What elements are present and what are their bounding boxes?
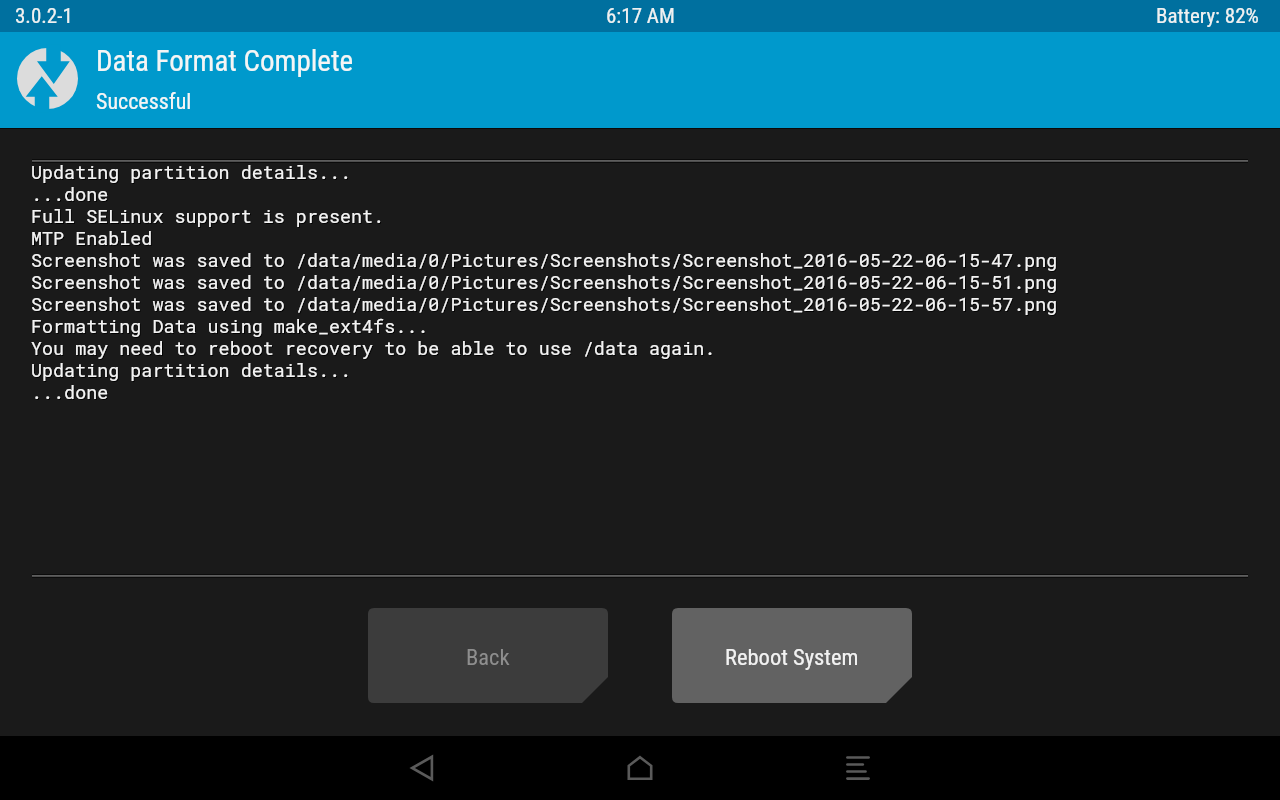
button[interactable]: Reboot System — [672, 608, 912, 703]
staticText: 3.0.2-1 — [15, 4, 73, 29]
staticText: Successful — [96, 89, 192, 115]
staticText: ...done — [31, 382, 109, 404]
staticText: You may need to reboot recovery to be ab… — [31, 338, 716, 360]
button[interactable]: Home — [608, 736, 672, 800]
staticText: 6:17 AM — [606, 4, 675, 29]
staticText: Data Format Complete — [96, 44, 354, 78]
staticText: Updating partition details... — [31, 360, 352, 382]
staticText: Battery: 82% — [1156, 4, 1259, 29]
button[interactable]: Recent apps — [826, 736, 890, 800]
staticText: Reboot System — [725, 644, 859, 670]
staticText: Screenshot was saved to /data/media/0/Pi… — [31, 294, 1058, 316]
staticText: Screenshot was saved to /data/media/0/Pi… — [31, 272, 1058, 294]
button[interactable]: Back — [368, 608, 608, 703]
staticText: Full SELinux support is present. — [31, 206, 385, 228]
staticText: Formatting Data using make_ext4fs... — [31, 316, 429, 338]
staticText: Back — [466, 644, 510, 670]
staticText: MTP Enabled — [31, 228, 153, 250]
staticText: Screenshot was saved to /data/media/0/Pi… — [31, 250, 1058, 272]
button[interactable]: Back — [390, 736, 454, 800]
staticText: Updating partition details... — [31, 162, 352, 184]
staticText: ...done — [31, 184, 109, 206]
